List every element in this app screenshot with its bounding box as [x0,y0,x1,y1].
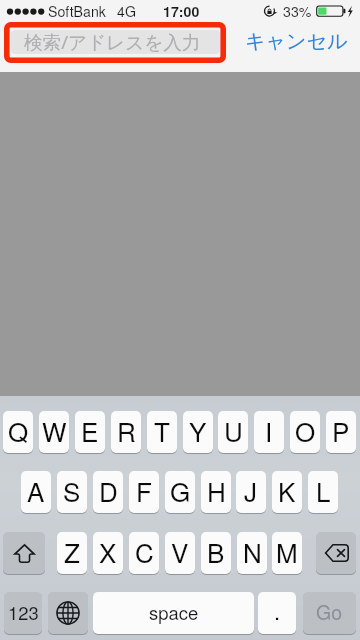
staticText: L [316,472,331,509]
button[interactable]: G [165,471,195,513]
staticText: F [136,472,152,509]
staticText: 4G [117,1,136,21]
staticText: W [42,412,67,449]
staticText: O [295,412,316,449]
button[interactable]: L [308,471,338,513]
staticText: Y [189,412,207,449]
staticText: T [154,412,170,449]
button[interactable]: N [237,532,267,574]
staticText: A [27,472,45,509]
button[interactable]: H [201,471,231,513]
staticText: V [171,533,189,570]
button[interactable]: A [21,471,51,513]
button[interactable]: O [290,411,320,453]
button[interactable]: E [75,411,105,453]
staticText: S [63,472,81,509]
staticText: 17:00 [163,1,200,21]
staticText: SoftBank [48,1,106,21]
staticText: K [278,472,296,509]
staticText: Go [316,598,343,626]
button[interactable]: I [254,411,284,453]
button[interactable]: キャンセル [245,29,348,54]
button[interactable]: Q [3,411,33,453]
button[interactable]: Backspace [316,532,356,574]
staticText: . [274,595,281,627]
staticText: G [170,472,191,509]
button[interactable]: J [236,471,266,513]
staticText: E [81,412,99,449]
staticText: 123 [8,599,39,625]
button[interactable]: 123 [4,592,42,634]
staticText: M [276,533,298,570]
button[interactable]: T [147,411,177,453]
button[interactable]: space [93,592,254,634]
button[interactable]: Switch keyboard [48,592,88,634]
button[interactable]: P [326,411,356,453]
staticText: C [135,533,154,570]
staticText: J [244,472,258,509]
button[interactable]: M [272,532,302,574]
staticText: space [149,599,199,625]
staticText: Q [8,412,29,449]
staticText: 33% [283,1,312,21]
staticText: P [332,412,350,449]
staticText: B [207,533,225,570]
staticText: D [99,472,118,509]
staticText: Z [64,533,80,570]
button[interactable]: Z [57,532,87,574]
button[interactable]: 検索/アドレスを入力 [11,30,220,54]
staticText: X [99,533,117,570]
button[interactable]: V [165,532,195,574]
staticText: R [117,412,136,449]
button[interactable]: D [93,471,123,513]
button[interactable]: Go [303,592,356,634]
staticText: 検索/アドレスを入力 [24,30,201,53]
staticText: H [207,472,226,509]
button[interactable]: C [129,532,159,574]
button[interactable]: B [201,532,231,574]
button[interactable]: S [57,471,87,513]
staticText: U [224,412,243,449]
button[interactable]: K [272,471,302,513]
button[interactable]: F [129,471,159,513]
staticText: I [265,412,273,449]
button[interactable]: . [258,592,296,634]
button[interactable]: X [93,532,123,574]
button[interactable]: U [218,411,248,453]
button[interactable]: R [111,411,141,453]
button[interactable]: Y [183,411,213,453]
button[interactable]: Shift [3,532,45,574]
button[interactable]: W [39,411,69,453]
staticText: N [243,533,262,570]
